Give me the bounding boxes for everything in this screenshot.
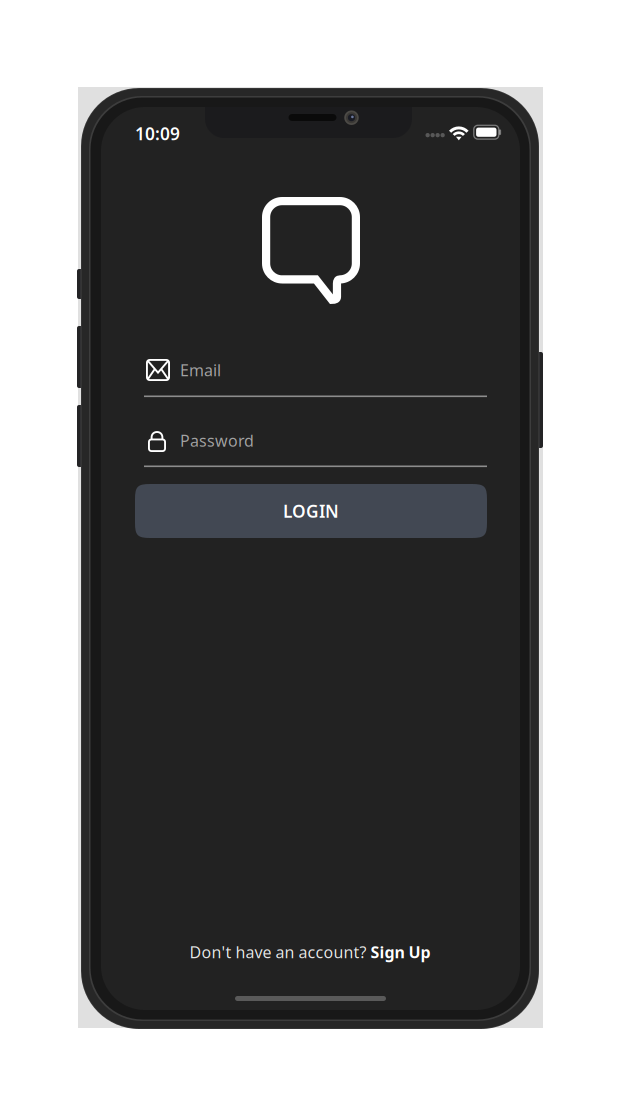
- staticText: Sign Up: [370, 941, 430, 963]
- staticText: Email: [180, 359, 221, 381]
- staticText: LOGIN: [283, 499, 339, 522]
- button[interactable]: Don't have an account?: [160, 939, 460, 965]
- staticText: Password: [180, 430, 254, 451]
- staticText: 10:09: [135, 122, 180, 145]
- staticText: Don't have an account?: [189, 941, 370, 963]
- button[interactable]: LOGIN: [135, 484, 487, 538]
